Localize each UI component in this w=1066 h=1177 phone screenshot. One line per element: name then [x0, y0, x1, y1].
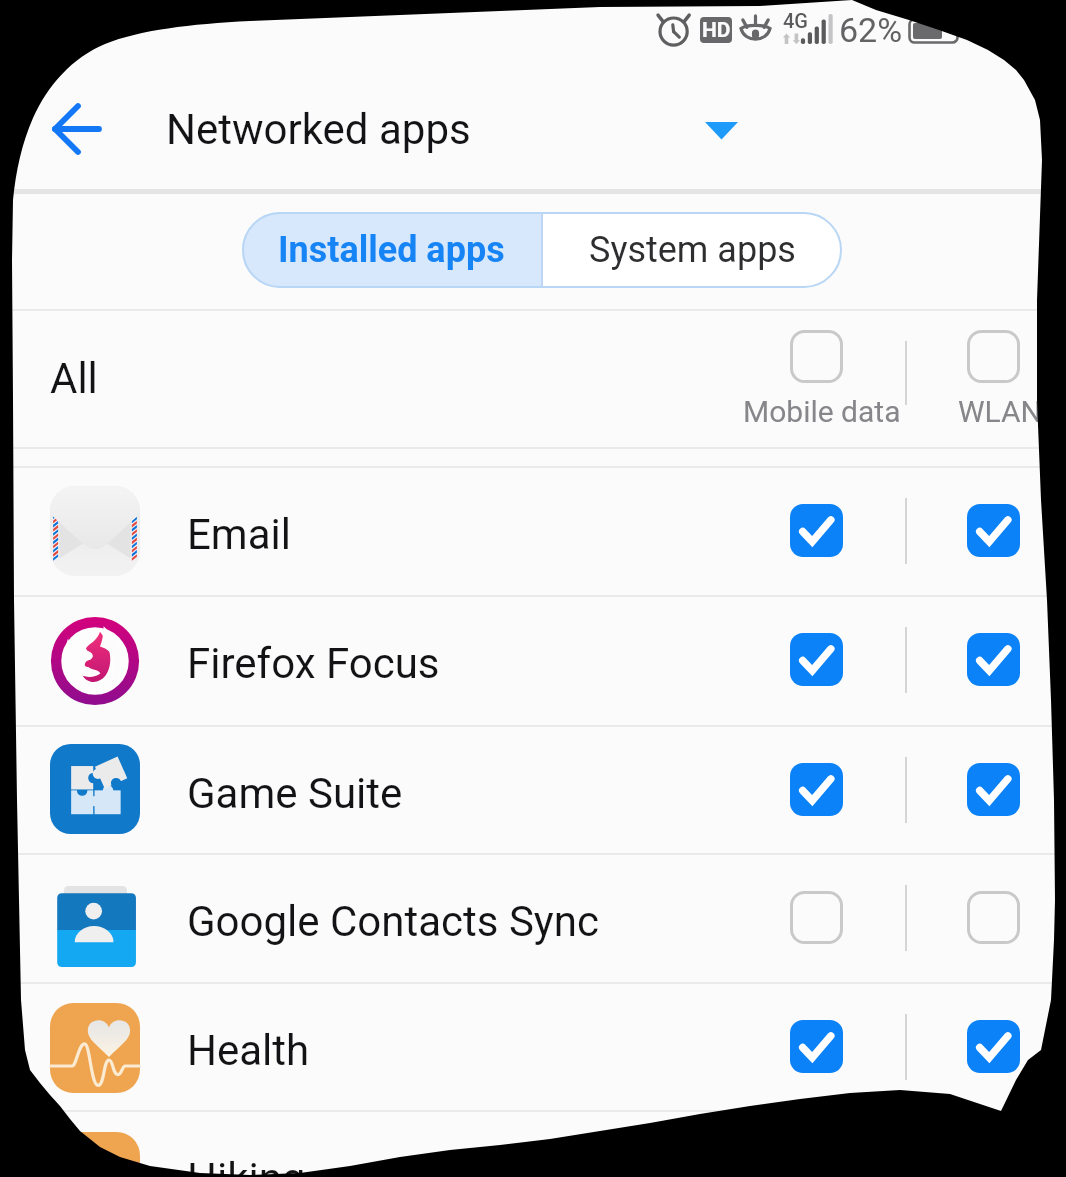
staticText: Health: [187, 1026, 310, 1075]
staticText: Hiking: [187, 1154, 306, 1177]
button[interactable]: Hiking: [0, 1112, 1066, 1177]
button[interactable]: Google Contacts Sync: [0, 855, 1066, 984]
button[interactable]: Toggle: [967, 504, 1020, 557]
button[interactable]: Email: [0, 468, 1066, 597]
button[interactable]: Toggle: [790, 504, 843, 557]
staticText: Firefox Focus: [187, 639, 440, 688]
staticText: All: [50, 354, 98, 403]
staticText: HD: [702, 18, 731, 43]
button[interactable]: Game Suite: [0, 727, 1066, 855]
button[interactable]: Toggle: [790, 1020, 843, 1073]
button[interactable]: Back: [27, 81, 123, 177]
staticText: Email: [187, 510, 291, 559]
button[interactable]: Firefox Focus: [0, 597, 1066, 727]
staticText: Mobile data: [743, 394, 901, 429]
button[interactable]: Health: [0, 984, 1066, 1112]
staticText: 4G: [783, 9, 808, 32]
button[interactable]: System apps: [543, 212, 842, 288]
button[interactable]: Toggle: [790, 763, 843, 816]
button[interactable]: Toggle: [790, 891, 843, 944]
staticText: Installed apps: [278, 229, 505, 271]
button[interactable]: Toggle: [967, 633, 1020, 686]
staticText: Google Contacts Sync: [187, 897, 599, 946]
staticText: 2: [976, 10, 996, 50]
button[interactable]: Installed apps: [242, 212, 541, 288]
button[interactable]: Toggle: [967, 891, 1020, 944]
staticText: System apps: [589, 229, 796, 271]
staticText: Game Suite: [187, 769, 403, 818]
button[interactable]: Toggle: [967, 763, 1020, 816]
staticText: Networked apps: [166, 105, 471, 154]
staticText: 62%: [839, 10, 903, 50]
button[interactable]: Toggle: [790, 633, 843, 686]
button[interactable]: All: [0, 311, 1066, 445]
button[interactable]: Toggle: [967, 1020, 1020, 1073]
button[interactable]: Filter: [685, 102, 759, 160]
staticText: WLAN: [958, 394, 1043, 429]
button[interactable]: Toggle: [790, 330, 843, 383]
button[interactable]: Toggle: [967, 330, 1020, 383]
